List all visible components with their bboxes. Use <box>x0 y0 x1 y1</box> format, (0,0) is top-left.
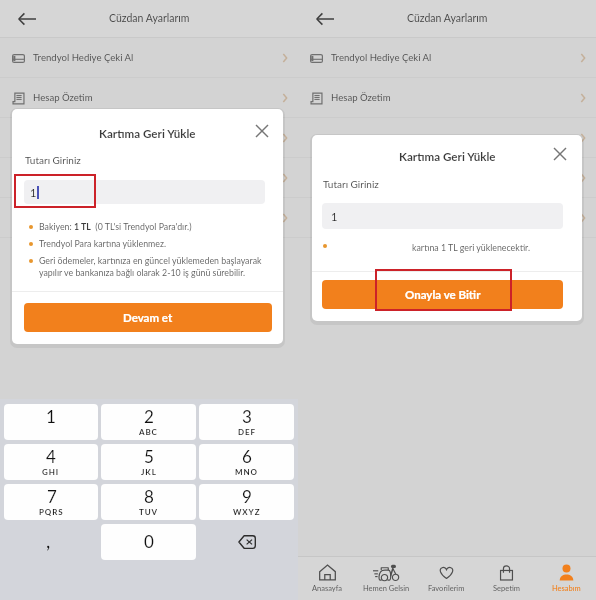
button[interactable]: 8 <box>101 484 196 520</box>
staticText <box>33 132 282 144</box>
button[interactable]: 2 <box>101 404 196 440</box>
staticText: MNO <box>235 467 258 477</box>
button[interactable]: 1 <box>24 180 265 204</box>
staticText: DEF <box>238 427 256 437</box>
staticText <box>33 172 282 184</box>
button[interactable]: 0 <box>101 524 196 560</box>
staticText: Devam et <box>123 311 173 325</box>
staticText: Favorilerim <box>428 584 465 593</box>
button[interactable] <box>298 198 596 238</box>
staticText: Hesap Özetim <box>33 92 282 104</box>
button[interactable]: Sil <box>199 524 294 560</box>
button[interactable]: Geri <box>16 8 38 30</box>
button[interactable]: virgül <box>4 524 98 560</box>
button[interactable]: Favorilerim <box>416 556 476 600</box>
staticText: WXYZ <box>233 507 261 517</box>
staticText: Onayla ve Bitir <box>405 288 481 302</box>
staticText: 5 <box>144 446 154 466</box>
button[interactable]: Hesap Özetim <box>0 78 298 118</box>
staticText: 3 <box>242 406 252 426</box>
staticText: 2 <box>144 406 154 426</box>
staticText <box>331 132 580 144</box>
staticText: Kartıma Geri Yükle <box>399 150 496 164</box>
staticText: Trendyol Hediye Çeki Al <box>331 52 580 64</box>
staticText: Trendyol Hediye Çeki Al <box>33 52 282 64</box>
button[interactable]: 6 <box>199 444 294 480</box>
staticText: kartına 1 TL geri yüklenecektir. <box>412 242 531 253</box>
button[interactable]: Hesap Özetim <box>298 78 596 118</box>
button[interactable] <box>0 198 298 238</box>
button[interactable]: Geri <box>314 8 336 30</box>
staticText: 1 <box>331 210 338 223</box>
button[interactable]: 3 <box>199 404 294 440</box>
button[interactable]: Trendyol Hediye Çeki Al <box>0 38 298 78</box>
staticText: Hemen Gelsin <box>363 584 410 593</box>
button[interactable] <box>0 118 298 158</box>
staticText: Kartıma Geri Yükle <box>99 127 196 141</box>
staticText: 8 <box>144 486 154 506</box>
button[interactable]: 7 <box>4 484 98 520</box>
button[interactable]: 1 <box>4 404 98 440</box>
button[interactable]: Sepetim <box>476 556 536 600</box>
staticText <box>331 172 580 184</box>
button[interactable] <box>298 158 596 198</box>
button[interactable]: Kapat <box>549 143 571 165</box>
staticText: JKL <box>141 467 157 477</box>
button[interactable]: 9 <box>199 484 294 520</box>
staticText: Hesabım <box>552 584 581 593</box>
button[interactable]: 4 <box>4 444 98 480</box>
staticText: TUV <box>139 507 158 517</box>
button[interactable] <box>0 158 298 198</box>
staticText: PQRS <box>39 507 64 517</box>
staticText: GHI <box>42 467 60 477</box>
staticText: ABC <box>139 427 158 437</box>
staticText: , <box>46 529 51 552</box>
button[interactable]: Kapat <box>251 120 273 142</box>
button[interactable]: Onayla ve Bitir <box>322 280 563 309</box>
button[interactable]: 1 <box>322 203 563 229</box>
staticText: 7 <box>47 486 57 506</box>
staticText: Bakiyen: 1 TL (0 TL'si Trendyol Para'dır… <box>39 221 192 232</box>
staticText: Sepetim <box>493 584 520 593</box>
staticText: Anasayfa <box>312 584 343 593</box>
staticText: 9 <box>242 486 252 506</box>
button[interactable]: Hemen Gelsin <box>357 556 416 600</box>
staticText: Cüzdan Ayarlarım <box>407 12 488 25</box>
staticText: Tutarı Giriniz <box>25 154 81 166</box>
staticText: 6 <box>242 446 252 466</box>
staticText: 1 <box>30 186 37 199</box>
staticText: Cüzdan Ayarlarım <box>109 12 190 25</box>
button[interactable]: 5 <box>101 444 196 480</box>
staticText: Tutarı Giriniz <box>323 178 379 190</box>
staticText <box>331 212 580 224</box>
staticText <box>33 212 282 224</box>
staticText: 0 <box>144 531 154 551</box>
button[interactable]: Hesabım <box>536 556 596 600</box>
staticText: 4 <box>46 446 56 466</box>
staticText: Geri ödemeler, kartınıza en güncel yükle… <box>39 255 271 278</box>
button[interactable]: Devam et <box>24 303 272 332</box>
button[interactable]: Anasayfa <box>298 556 357 600</box>
button[interactable] <box>298 118 596 158</box>
staticText: Trendyol Para kartına yüklenmez. <box>39 238 166 249</box>
staticText: 1 <box>46 406 56 426</box>
staticText: Hesap Özetim <box>331 92 580 104</box>
button[interactable]: Trendyol Hediye Çeki Al <box>298 38 596 78</box>
